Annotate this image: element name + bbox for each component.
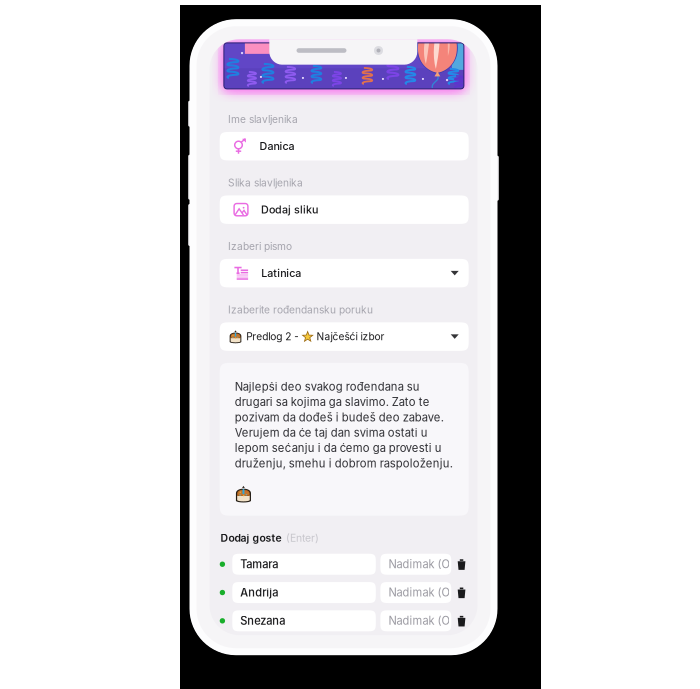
- button[interactable]: Danica: [220, 132, 469, 160]
- staticText: Nadimak (O: [388, 557, 449, 571]
- staticText: Andrija: [240, 586, 278, 599]
- staticText: Nadimak (O: [388, 586, 449, 599]
- staticText: Ime slavljenika: [228, 113, 298, 125]
- button[interactable]: Tamara: [232, 554, 376, 575]
- staticText: Predlog 2 -: [246, 330, 299, 343]
- button[interactable]: Nadimak (O: [380, 582, 451, 603]
- staticText: (Enter): [286, 532, 319, 544]
- button[interactable]: Predlog 2 -: [220, 322, 469, 351]
- staticText: Latinica: [261, 267, 301, 280]
- button[interactable]: Snezana: [232, 610, 376, 631]
- staticText: Dodaj goste: [220, 532, 281, 544]
- staticText: Izaberi pismo: [228, 240, 292, 252]
- staticText: Danica: [259, 140, 294, 153]
- button[interactable]: Latinica: [220, 259, 469, 287]
- staticText: Najlepši deo svakog rođendana su drugari…: [235, 380, 453, 470]
- staticText: Snezana: [240, 614, 285, 627]
- button[interactable]: Delete Tamara: [457, 554, 466, 575]
- staticText: Dodaj sliku: [261, 203, 318, 216]
- button[interactable]: Andrija: [232, 582, 376, 603]
- button[interactable]: Dodaj sliku: [220, 195, 469, 224]
- staticText: Nadimak (O: [388, 614, 449, 627]
- button[interactable]: Nadimak (O: [380, 554, 451, 575]
- staticText: Slika slavljenika: [228, 177, 303, 189]
- staticText: Izaberite rođendansku poruku: [228, 304, 373, 316]
- button[interactable]: Delete Snezana: [457, 610, 466, 631]
- staticText: Tamara: [240, 557, 278, 571]
- staticText: Najčešći izbor: [316, 330, 384, 343]
- button[interactable]: Nadimak (O: [380, 610, 451, 631]
- button[interactable]: Delete Andrija: [457, 582, 466, 603]
